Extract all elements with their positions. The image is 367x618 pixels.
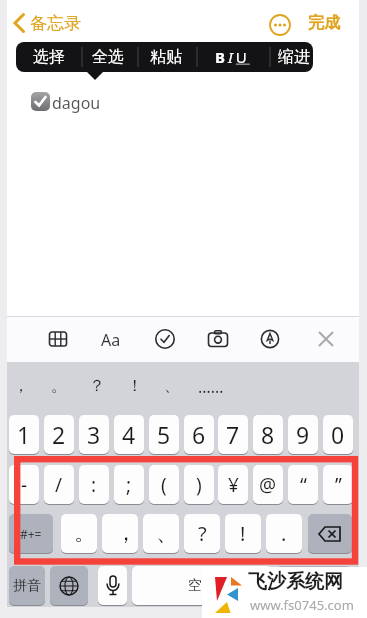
staticText: www.fs0745.com: [250, 596, 354, 614]
button[interactable]: #+=: [9, 514, 53, 553]
staticText: #+=: [20, 526, 42, 542]
staticText: 全选: [92, 47, 124, 67]
staticText: 8: [261, 419, 275, 450]
staticText: 5: [157, 419, 171, 450]
button[interactable]: ): [184, 465, 214, 504]
button[interactable]: [47, 328, 69, 350]
button[interactable]: 全选: [78, 42, 138, 72]
button[interactable]: “: [288, 465, 318, 504]
button[interactable]: ？: [89, 376, 105, 396]
staticText: ?: [198, 520, 207, 547]
button[interactable]: 5: [149, 415, 179, 454]
staticText: ，: [115, 519, 137, 547]
staticText: 备忘录: [30, 13, 81, 34]
staticText: 完成: [308, 13, 340, 33]
staticText: dagou: [52, 92, 101, 114]
button[interactable]: 9: [288, 415, 318, 454]
button[interactable]: Aa: [101, 329, 121, 351]
staticText: BIU: [215, 47, 250, 67]
staticText: 3: [87, 419, 101, 450]
button[interactable]: [308, 514, 352, 553]
button[interactable]: 2: [44, 415, 74, 454]
button[interactable]: [50, 566, 88, 605]
button[interactable]: 4: [114, 415, 144, 454]
staticText: 飞沙系统网: [248, 570, 343, 594]
button[interactable]: .: [266, 514, 302, 553]
button[interactable]: 、: [143, 514, 179, 553]
button[interactable]: 换行: [276, 566, 351, 605]
button[interactable]: [98, 566, 127, 605]
button[interactable]: 选择: [19, 42, 79, 72]
staticText: :: [91, 472, 97, 498]
button[interactable]: 拼音: [9, 566, 45, 605]
button[interactable]: ，: [13, 376, 29, 396]
button[interactable]: 6: [184, 415, 214, 454]
staticText: 。: [74, 519, 96, 547]
button[interactable]: :: [79, 465, 109, 504]
button[interactable]: 、: [164, 376, 180, 396]
staticText: /: [55, 472, 63, 498]
button[interactable]: [316, 329, 336, 349]
button[interactable]: 1: [9, 415, 39, 454]
staticText: 选择: [33, 47, 65, 67]
button[interactable]: 完成: [308, 13, 340, 33]
button[interactable]: (: [149, 465, 179, 504]
staticText: 7: [226, 419, 240, 450]
button[interactable]: 粘贴: [136, 42, 196, 72]
staticText: 2: [52, 419, 66, 450]
staticText: 粘贴: [150, 47, 182, 67]
button[interactable]: ……: [198, 376, 224, 398]
button[interactable]: [269, 14, 291, 36]
button[interactable]: @: [253, 465, 283, 504]
button[interactable]: ?: [184, 514, 220, 553]
staticText: 、: [156, 519, 178, 547]
button[interactable]: 。: [61, 514, 97, 553]
staticText: ”: [335, 472, 342, 498]
staticText: -: [21, 472, 28, 498]
button[interactable]: ，: [102, 514, 138, 553]
staticText: 4: [122, 419, 136, 450]
button[interactable]: BIU: [202, 42, 262, 72]
staticText: ): [196, 472, 202, 498]
staticText: 6: [192, 419, 206, 450]
button[interactable]: [207, 328, 229, 350]
staticText: .: [281, 520, 287, 547]
button[interactable]: ;: [114, 465, 144, 504]
button[interactable]: 空格: [132, 566, 271, 605]
staticText: 空格: [188, 577, 216, 595]
staticText: 9: [296, 419, 310, 450]
button[interactable]: ¥: [218, 465, 248, 504]
staticText: 0: [331, 419, 345, 450]
staticText: ;: [126, 472, 132, 498]
button[interactable]: /: [44, 465, 74, 504]
staticText: 缩进: [278, 47, 310, 67]
button[interactable]: [31, 92, 50, 111]
button[interactable]: ”: [323, 465, 353, 504]
button[interactable]: -: [9, 465, 39, 504]
staticText: 1: [17, 419, 31, 450]
staticText: (: [161, 472, 167, 498]
button[interactable]: [154, 328, 176, 350]
button[interactable]: 3: [79, 415, 109, 454]
staticText: !: [240, 520, 246, 547]
button[interactable]: !: [225, 514, 261, 553]
staticText: “: [300, 472, 307, 498]
button[interactable]: [259, 328, 281, 350]
button[interactable]: 。: [51, 376, 67, 396]
button[interactable]: [10, 8, 90, 38]
button[interactable]: 8: [253, 415, 283, 454]
button[interactable]: 缩进: [264, 42, 324, 72]
staticText: @: [259, 472, 277, 498]
button[interactable]: ！: [127, 376, 143, 396]
button[interactable]: 0: [323, 415, 353, 454]
staticText: ¥: [228, 472, 239, 498]
staticText: 换行: [300, 577, 328, 595]
staticText: 拼音: [13, 577, 41, 595]
button[interactable]: 7: [218, 415, 248, 454]
